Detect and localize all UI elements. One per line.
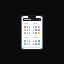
button[interactable]: App group bbox=[32, 36, 41, 46]
button[interactable]: Menu bbox=[23, 18, 41, 21]
button[interactable]: App group bbox=[23, 36, 31, 46]
button[interactable]: App group bbox=[32, 22, 41, 35]
button[interactable]: App group bbox=[23, 22, 31, 35]
